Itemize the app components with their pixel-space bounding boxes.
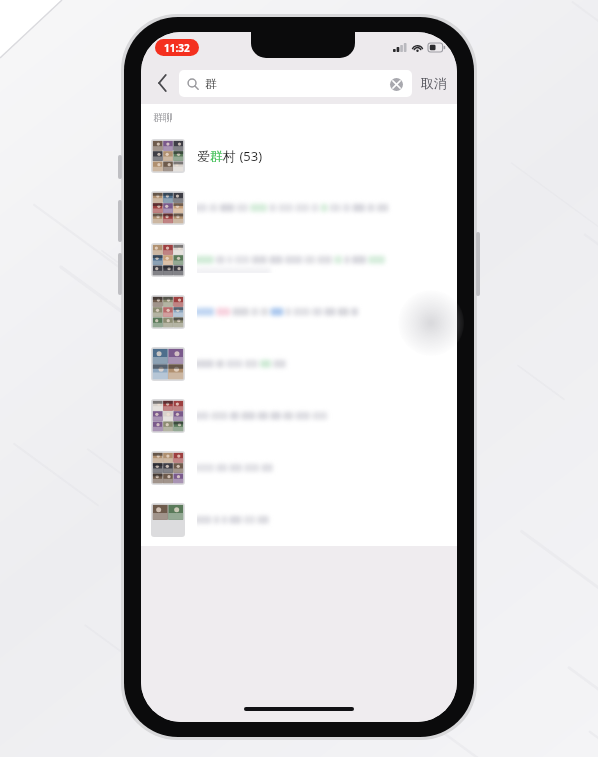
button[interactable]	[141, 494, 457, 546]
button[interactable]: Back	[149, 70, 175, 96]
button[interactable]: 群	[179, 70, 412, 97]
button[interactable]	[141, 182, 457, 234]
staticText: 爱群村 (53)	[197, 147, 263, 165]
staticText: 取消	[421, 75, 447, 91]
button[interactable]	[141, 390, 457, 442]
button[interactable]: Clear search	[388, 76, 404, 92]
button[interactable]	[141, 234, 457, 286]
button[interactable]	[141, 338, 457, 390]
button[interactable]	[141, 442, 457, 494]
staticText: 11:32	[164, 41, 190, 55]
button[interactable]: 爱群村 (53)	[141, 130, 457, 182]
button[interactable]: 取消	[419, 71, 449, 95]
button[interactable]	[141, 286, 457, 338]
staticText: 群	[205, 76, 217, 91]
staticText: 群聊	[153, 111, 173, 124]
